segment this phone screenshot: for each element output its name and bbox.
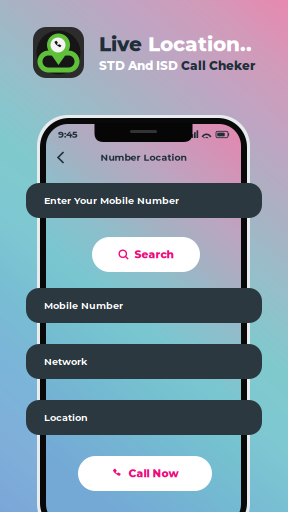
staticText: Call Now xyxy=(128,467,178,480)
button[interactable]: Back xyxy=(52,146,70,169)
staticText: Location.. xyxy=(148,32,252,56)
staticText: 9:45 xyxy=(58,129,78,140)
staticText: Number Location xyxy=(100,152,186,163)
staticText: Search xyxy=(134,248,173,261)
staticText: Live xyxy=(99,32,148,56)
staticText: Location xyxy=(44,412,88,423)
staticText: Enter Your Mobile Number xyxy=(44,195,179,206)
button[interactable]: Mobile Number xyxy=(26,288,262,323)
staticText: STD And ISD xyxy=(99,58,181,73)
button[interactable]: Call Now xyxy=(78,456,212,491)
button[interactable]: Search xyxy=(92,237,200,272)
staticText: Mobile Number xyxy=(44,300,123,311)
staticText: Call Cheker xyxy=(181,58,255,73)
staticText: Network xyxy=(44,356,87,367)
button[interactable]: Enter Your Mobile Number xyxy=(26,183,262,218)
button[interactable]: Location xyxy=(26,400,262,435)
button[interactable]: Network xyxy=(26,344,262,379)
